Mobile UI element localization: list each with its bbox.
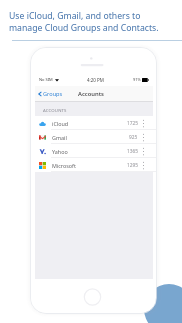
button[interactable]: More options for Microsoft: [140, 159, 146, 171]
staticText: Use iCloud, Gmail, and others to: [9, 10, 141, 22]
staticText: ACCOUNTS: [43, 107, 67, 113]
staticText: 1295: [127, 162, 138, 169]
staticText: Accounts: [78, 90, 104, 98]
staticText: 1725: [127, 120, 138, 127]
button[interactable]: More options for Gmail: [140, 131, 146, 143]
staticText: Microsoft: [52, 162, 76, 169]
staticText: 925: [129, 134, 138, 141]
button[interactable]: Microsoft: [35, 158, 153, 172]
button[interactable]: More options for iCloud: [140, 117, 146, 129]
staticText: Gmail: [52, 134, 67, 141]
button[interactable]: Yahoo: [35, 144, 153, 158]
button[interactable]: Gmail: [35, 130, 153, 144]
staticText: 91%: [133, 77, 141, 82]
button[interactable]: More options for Yahoo: [140, 145, 146, 157]
button[interactable]: iCloud: [35, 116, 153, 130]
button[interactable]: Groups: [35, 86, 66, 102]
staticText: No SIM: [39, 77, 53, 82]
staticText: 4:20 PM: [87, 77, 104, 83]
staticText: Yahoo: [52, 148, 68, 155]
staticText: manage Cloud Groups and Contacts.: [9, 22, 159, 34]
staticText: 1365: [127, 148, 138, 155]
staticText: Groups: [43, 90, 63, 98]
staticText: iCloud: [52, 120, 69, 127]
